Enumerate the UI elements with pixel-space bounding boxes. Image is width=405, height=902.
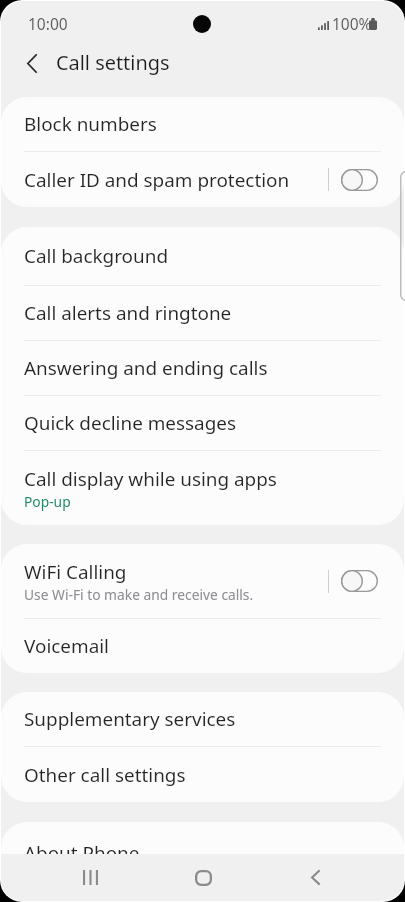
button[interactable]: Back [259,854,371,901]
button[interactable]: Home [147,854,259,901]
staticText: 10:00 [28,13,68,34]
staticText: Quick decline messages [24,410,237,436]
button[interactable]: Caller ID and spam protection [1,152,404,207]
staticText: Voicemail [24,633,109,659]
button[interactable]: Call background [1,227,404,285]
staticText: Call settings [56,49,170,76]
staticText: Call alerts and ringtone [24,300,232,326]
button[interactable]: Quick decline messages [1,396,404,450]
button[interactable]: Other call settings [1,747,404,802]
staticText: Pop-up [24,492,71,511]
staticText: 100% [332,13,372,34]
button[interactable]: Toggle [341,169,378,191]
staticText: Call display while using apps [24,466,277,492]
button[interactable]: Toggle [341,570,378,592]
button[interactable]: Call alerts and ringtone [1,286,404,340]
button[interactable]: About Phone [1,822,404,883]
button[interactable]: Recent apps [34,854,147,901]
staticText: About Phone [24,840,140,866]
staticText: Answering and ending calls [24,355,268,381]
staticText: Supplementary services [24,706,236,732]
staticText: WiFi Calling [24,559,127,585]
button[interactable]: Software update [1,884,404,901]
button[interactable]: Call display while using apps [1,451,404,525]
button[interactable]: Voicemail [1,619,404,673]
staticText: Call background [24,243,169,269]
button[interactable]: Navigate up [17,48,47,78]
button[interactable]: Answering and ending calls [1,341,404,395]
staticText: Caller ID and spam protection [24,167,290,193]
button[interactable]: Supplementary services [1,692,404,746]
staticText: Other call settings [24,762,186,788]
staticText: Block numbers [24,111,157,137]
staticText: Use Wi-Fi to make and receive calls. [24,585,254,604]
button[interactable]: WiFi Calling [1,544,404,618]
button[interactable]: Block numbers [1,97,404,151]
